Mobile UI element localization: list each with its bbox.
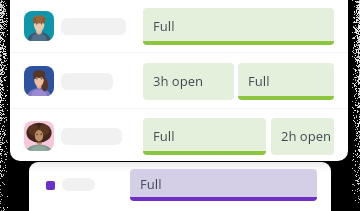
button[interactable]: Full (143, 8, 334, 45)
button[interactable]: Profile avatar (24, 66, 54, 96)
button[interactable]: Profile avatar (24, 11, 54, 41)
staticText: 3h open (153, 72, 204, 90)
staticText: 2h open (281, 127, 332, 145)
button[interactable]: 3h open (143, 63, 234, 100)
staticText: Full (248, 72, 270, 90)
button[interactable]: Profile avatar (24, 121, 54, 151)
button[interactable]: Full (238, 63, 334, 100)
staticText: Full (153, 127, 175, 145)
staticText: Full (153, 17, 175, 35)
button[interactable]: Full (143, 118, 266, 155)
staticText: Full (140, 175, 162, 193)
button[interactable]: 2h open (271, 118, 334, 155)
button[interactable]: Full (130, 169, 317, 201)
